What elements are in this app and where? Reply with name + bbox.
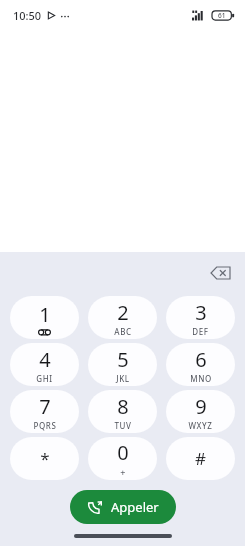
- button[interactable]: 1: [10, 296, 79, 339]
- staticText: WXYZ: [188, 420, 213, 431]
- button[interactable]: 6: [166, 343, 235, 386]
- staticText: 10:50: [13, 8, 42, 23]
- staticText: 9: [195, 393, 207, 420]
- staticText: 61: [218, 11, 226, 20]
- staticText: +: [120, 466, 126, 478]
- button[interactable]: 5: [88, 343, 157, 386]
- staticText: JKL: [116, 373, 130, 384]
- button[interactable]: 9: [166, 390, 235, 433]
- staticText: 0: [117, 439, 129, 466]
- button[interactable]: 7: [10, 390, 79, 433]
- staticText: Appeler: [111, 498, 159, 516]
- staticText: DEF: [192, 326, 209, 337]
- button[interactable]: *: [10, 437, 79, 480]
- staticText: #: [195, 447, 206, 470]
- button[interactable]: 8: [88, 390, 157, 433]
- button[interactable]: 4: [10, 343, 79, 386]
- button[interactable]: 2: [88, 296, 157, 339]
- staticText: 7: [39, 393, 51, 420]
- staticText: MNO: [190, 373, 212, 384]
- staticText: GHI: [36, 373, 53, 384]
- staticText: PQRS: [33, 420, 57, 431]
- staticText: 6: [195, 346, 207, 373]
- staticText: TUV: [114, 420, 132, 431]
- staticText: 1: [39, 301, 51, 328]
- button[interactable]: 0: [88, 437, 157, 480]
- staticText: 3: [195, 299, 207, 326]
- staticText: ABC: [114, 326, 132, 337]
- button[interactable]: #: [166, 437, 235, 480]
- staticText: 2: [117, 299, 129, 326]
- staticText: 5: [117, 346, 129, 373]
- staticText: 4: [39, 346, 51, 373]
- staticText: *: [40, 447, 50, 470]
- button[interactable]: Backspace: [203, 256, 237, 290]
- button[interactable]: Appeler: [70, 490, 176, 524]
- button[interactable]: 3: [166, 296, 235, 339]
- staticText: 8: [117, 393, 129, 420]
